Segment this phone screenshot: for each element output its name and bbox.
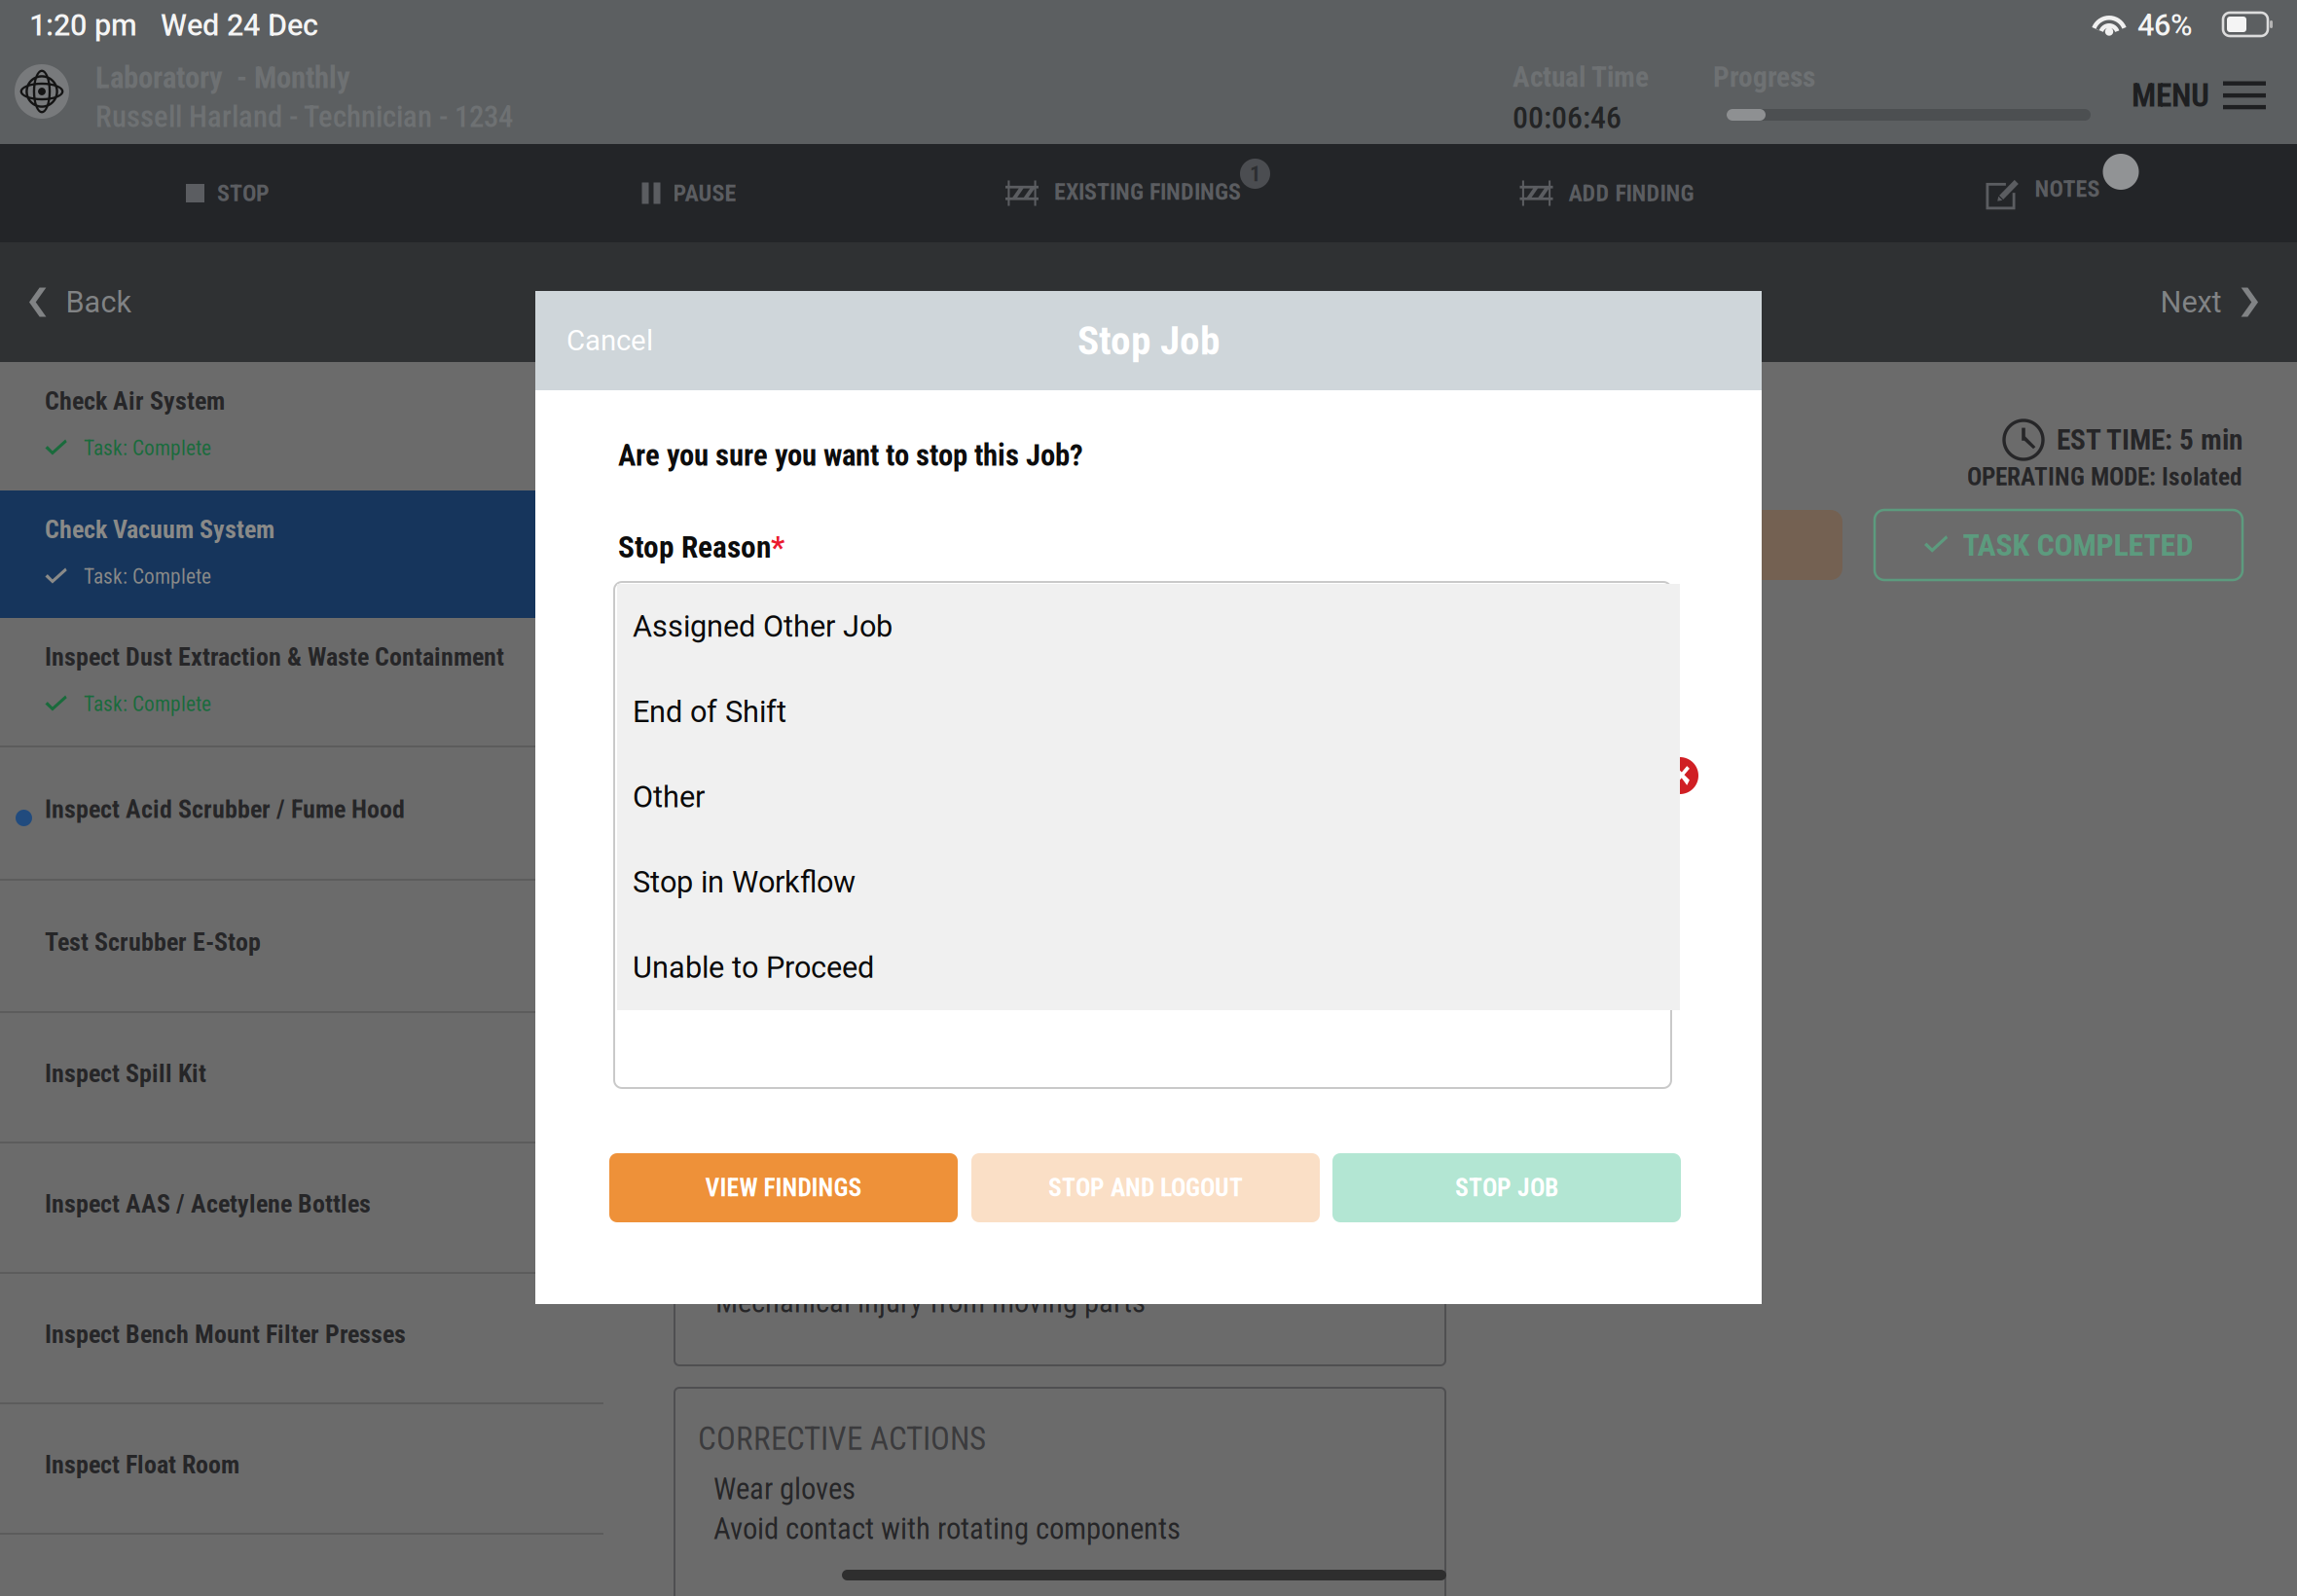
staticText: Wear gloves [713, 1471, 856, 1506]
staticText: PAUSE [673, 179, 736, 207]
button[interactable]: Check Vacuum System [0, 490, 603, 618]
button[interactable]: ADD FINDING [1407, 144, 1806, 242]
staticText: EST TIME: 5 min [2057, 423, 2242, 457]
staticText: MENU [2132, 76, 2209, 114]
staticText: Progress [1713, 60, 1815, 94]
button[interactable]: EXISTING FINDINGS [909, 144, 1337, 242]
button[interactable]: Back [19, 242, 282, 362]
staticText: Are you sure you want to stop this Job? [618, 438, 1083, 473]
button[interactable]: TASK COMPLETED [1875, 510, 2242, 580]
button[interactable]: Inspect Dust Extraction & Waste Containm… [0, 618, 603, 745]
staticText: NOTES [2035, 175, 2100, 203]
button[interactable]: Assigned Other Job [617, 584, 1680, 669]
staticText: Task: Complete [84, 692, 211, 716]
button[interactable]: Check Air System [0, 362, 603, 490]
button[interactable]: Inspect AAS / Acetylene Bottles [0, 1142, 603, 1272]
button[interactable]: Unable to Proceed [617, 925, 1680, 1010]
button[interactable]: STOP AND LOGOUT [971, 1153, 1320, 1222]
button[interactable]: VIEW FINDINGS [609, 1153, 958, 1222]
staticText: 1:20 pm Wed 24 Dec [29, 8, 318, 43]
staticText: Avoid contact with rotating components [713, 1511, 1181, 1546]
staticText: STOP JOB [1455, 1173, 1558, 1202]
staticText: Cancel [566, 324, 653, 357]
staticText: Back [66, 285, 132, 320]
staticText: Inspect AAS / Acetylene Bottles [45, 1189, 371, 1219]
staticText: 00:06:46 [1513, 99, 1622, 136]
staticText: Inspect Spill Kit [45, 1059, 206, 1088]
staticText: Stop Job [1077, 317, 1220, 364]
button[interactable]: Cancel [555, 310, 751, 371]
staticText: CORRECTIVE ACTIONS [698, 1420, 986, 1458]
button[interactable]: Test Scrubber E-Stop [0, 879, 603, 1011]
staticText: Inspect Float Room [45, 1450, 239, 1480]
button[interactable]: Inspect Float Room [0, 1402, 603, 1533]
button[interactable]: Inspect Spill Kit [0, 1011, 603, 1142]
button[interactable]: MENU [2132, 78, 2287, 113]
staticText: Check Vacuum System [45, 515, 274, 544]
staticText: Stop Reason [618, 529, 771, 565]
staticText: Assigned Other Job [633, 609, 893, 644]
button[interactable]: Stop in Workflow [617, 840, 1680, 925]
staticText: End of Shift [633, 694, 786, 729]
button[interactable]: Inspect Bench Mount Filter Presses [0, 1272, 603, 1402]
button[interactable]: Inspect Acid Scrubber / Fume Hood [0, 745, 603, 879]
staticText: STOP AND LOGOUT [1048, 1173, 1243, 1202]
staticText: 46% [2137, 8, 2193, 43]
staticText: EXISTING FINDINGS [1054, 178, 1241, 205]
button[interactable]: End of Shift [617, 669, 1680, 754]
button[interactable]: NOTES [1863, 144, 2223, 242]
staticText: Task: Complete [84, 564, 211, 589]
staticText: Russell Harland - Technician - 1234 [95, 99, 513, 134]
staticText: Mechanical injury from moving parts [715, 1285, 1146, 1320]
staticText: STOP [217, 179, 270, 207]
button[interactable]: PAUSE [494, 144, 884, 242]
button[interactable]: STOP [33, 144, 422, 242]
staticText: OPERATING MODE: Isolated [1967, 462, 2242, 491]
staticText: Laboratory - Monthly [95, 60, 350, 95]
staticText: * [771, 529, 784, 565]
staticText: Inspect Bench Mount Filter Presses [45, 1320, 406, 1349]
button[interactable]: Other [617, 754, 1680, 840]
staticText: 1 [1250, 161, 1260, 187]
staticText: Task: Complete [84, 436, 211, 460]
staticText: Inspect Acid Scrubber / Fume Hood [45, 795, 405, 824]
staticText: Stop in Workflow [633, 865, 856, 900]
staticText: Unable to Proceed [633, 950, 874, 985]
staticText: Check Air System [45, 386, 225, 416]
staticText: Next [2160, 285, 2222, 320]
staticText: TASK COMPLETED [1963, 527, 2193, 563]
button[interactable]: Next [2005, 242, 2268, 362]
staticText: ADD FINDING [1568, 179, 1694, 207]
staticText: Test Scrubber E-Stop [45, 927, 261, 957]
staticText: Other [633, 780, 705, 814]
staticText: Actual Time [1513, 60, 1649, 94]
staticText: VIEW FINDINGS [705, 1173, 862, 1202]
button[interactable]: STOP JOB [1332, 1153, 1681, 1222]
staticText: Inspect Dust Extraction & Waste Containm… [45, 642, 504, 672]
